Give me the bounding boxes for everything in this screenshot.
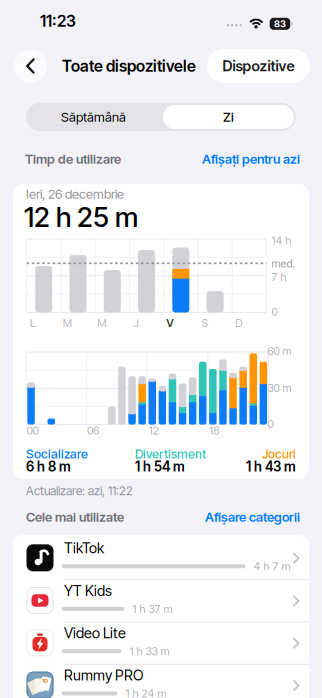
staticText: Socializare: [26, 446, 88, 461]
staticText: Rummy PRO: [64, 666, 143, 684]
staticText: 0: [271, 305, 277, 318]
staticText: 60 m: [267, 344, 291, 358]
staticText: 1 h 43 m: [246, 458, 296, 475]
staticText: M: [63, 316, 72, 330]
staticText: Dispozitive: [222, 57, 294, 75]
staticText: 1 h 37 m: [132, 602, 172, 615]
staticText: J: [133, 316, 138, 330]
staticText: 12: [149, 424, 159, 437]
button[interactable]: TikTok: [13, 537, 309, 579]
staticText: Ieri, 26 decembrie: [26, 186, 124, 202]
staticText: 83: [274, 18, 286, 30]
button[interactable]: Video Lite: [13, 622, 309, 664]
staticText: Toate dispozitivele: [62, 56, 196, 75]
staticText: Cele mai utilizate: [26, 509, 124, 525]
staticText: 00: [26, 424, 38, 437]
staticText: S: [201, 316, 207, 330]
button[interactable]: Zi: [161, 103, 296, 131]
staticText: 14 h: [271, 234, 291, 247]
staticText: Zi: [223, 109, 234, 125]
staticText: TikTok: [64, 539, 104, 557]
staticText: V: [166, 316, 174, 330]
staticText: 10: [42, 677, 48, 684]
staticText: Afișare categorii: [205, 509, 300, 525]
staticText: 1 h 33 m: [129, 644, 169, 658]
staticText: Actualizare: azi, 11:22: [26, 484, 133, 498]
staticText: 4 h 7 m: [253, 559, 290, 573]
button[interactable]: Dispozitive: [207, 49, 310, 83]
staticText: D: [235, 316, 242, 330]
staticText: Timp de utilizare: [25, 151, 121, 167]
staticText: med.: [271, 257, 295, 270]
staticText: 0: [267, 417, 273, 431]
button[interactable]: Afișare categorii: [205, 509, 300, 525]
staticText: 7 h: [271, 270, 286, 284]
staticText: Săptămână: [61, 109, 126, 125]
staticText: 06: [87, 424, 99, 437]
staticText: YT Kids: [64, 582, 112, 599]
button[interactable]: Back: [14, 49, 47, 82]
staticText: 30 m: [267, 381, 291, 395]
staticText: Divertisment: [135, 446, 206, 461]
button[interactable]: YT Kids: [13, 580, 309, 622]
staticText: Afișați pentru azi: [202, 151, 300, 167]
staticText: Video Lite: [64, 624, 126, 642]
staticText: 6 h 8 m: [26, 458, 71, 475]
staticText: 18: [209, 424, 219, 437]
staticText: 12 h 25 m: [24, 200, 138, 234]
staticText: 1 h 54 m: [135, 458, 185, 475]
staticText: 11:23: [40, 11, 76, 31]
staticText: L: [30, 316, 36, 330]
button[interactable]: 10: [13, 664, 309, 698]
button[interactable]: Săptămână: [26, 103, 161, 131]
staticText: M: [97, 316, 106, 330]
button[interactable]: Afișați pentru azi: [202, 151, 300, 167]
staticText: Jocuri: [262, 446, 296, 461]
staticText: 1 h 24 m: [125, 687, 166, 698]
